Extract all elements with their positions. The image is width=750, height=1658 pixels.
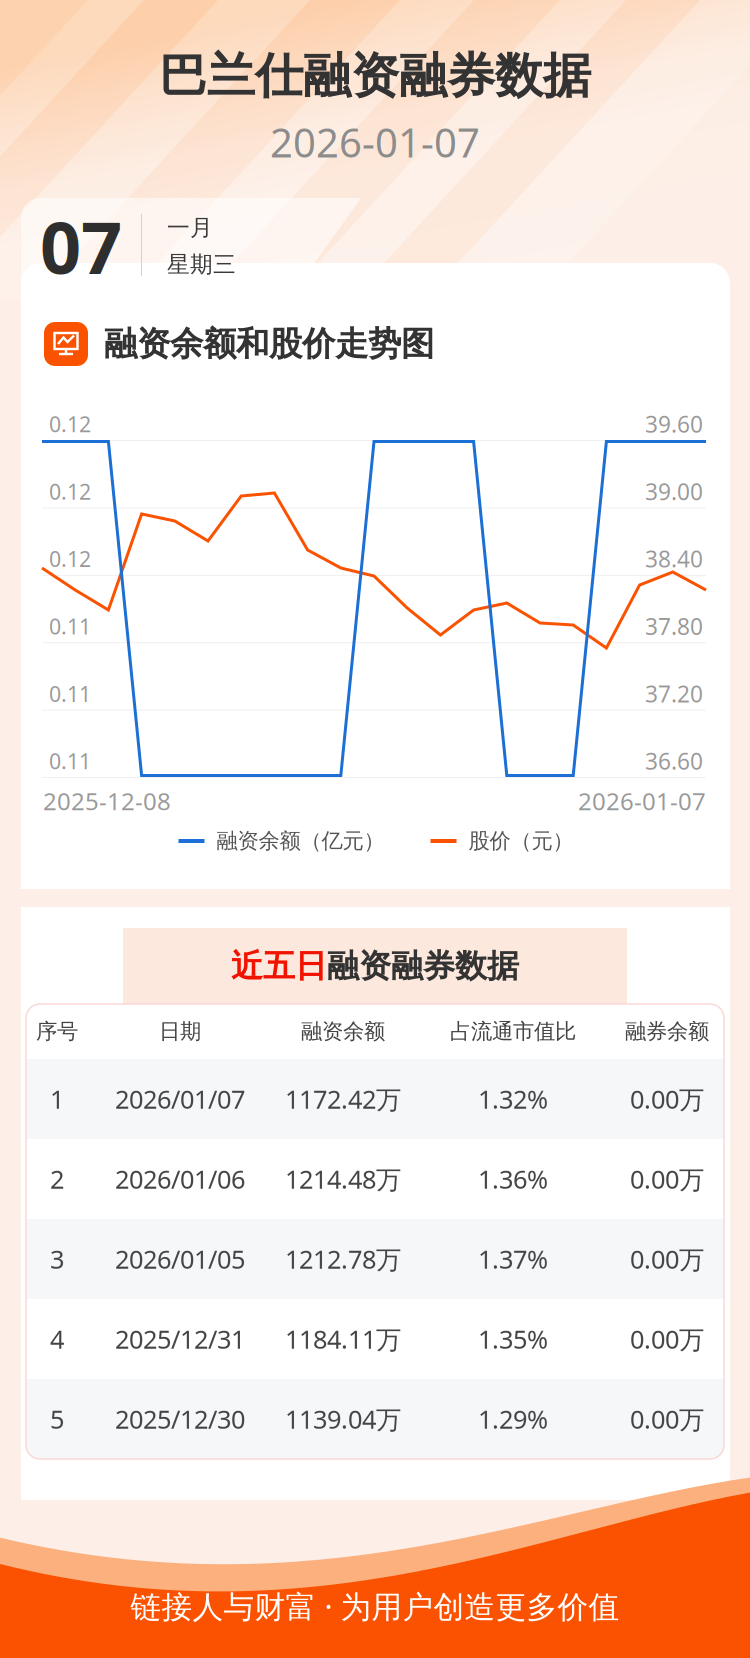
staticText: 07	[40, 198, 122, 294]
staticText: 1	[50, 1082, 64, 1116]
staticText: 链接人与财富 · 为用户创造更多价值	[130, 1586, 619, 1626]
staticText: 2025/12/31	[115, 1322, 245, 1356]
staticText: 一月	[167, 214, 213, 241]
staticText: 1172.42万	[285, 1082, 401, 1116]
staticText: 38.40	[645, 544, 703, 574]
staticText: 1.29%	[478, 1402, 548, 1436]
staticText: 序号	[36, 1018, 78, 1045]
staticText: 巴兰仕融资融券数据	[159, 46, 591, 105]
staticText: 0.12	[49, 545, 91, 573]
staticText: 股价（元）	[468, 828, 573, 854]
staticText: 2026/01/05	[115, 1242, 245, 1276]
staticText: 2025/12/30	[115, 1402, 245, 1436]
staticText: 4	[50, 1322, 64, 1356]
staticText: 2026-01-07	[578, 785, 706, 817]
staticText: 0.11	[49, 679, 91, 708]
staticText: 39.00	[645, 476, 703, 506]
staticText: 2	[50, 1162, 64, 1196]
staticText: 1184.11万	[285, 1322, 401, 1356]
staticText: 占流通市值比	[450, 1018, 576, 1045]
staticText: 1.35%	[478, 1322, 548, 1356]
staticText: 0.00万	[630, 1242, 704, 1276]
staticText: 2026-01-07	[270, 115, 480, 168]
staticText: 1.36%	[478, 1162, 548, 1196]
staticText: 0.12	[49, 477, 91, 505]
staticText: 2025-12-08	[43, 785, 171, 817]
staticText: 1.37%	[478, 1242, 548, 1276]
staticText: 37.80	[645, 611, 703, 641]
staticText: 融券余额	[625, 1018, 709, 1045]
staticText: 39.60	[645, 409, 703, 439]
staticText: 0.00万	[630, 1082, 704, 1116]
staticText: 星期三	[167, 250, 236, 278]
staticText: 0.00万	[630, 1162, 704, 1196]
staticText: 3	[50, 1242, 64, 1276]
staticText: 2026/01/07	[115, 1082, 245, 1116]
staticText: 2026/01/06	[115, 1162, 245, 1196]
staticText: 36.60	[645, 746, 703, 776]
staticText: 0.00万	[630, 1402, 704, 1436]
staticText: 日期	[159, 1018, 201, 1045]
staticText: 37.20	[645, 678, 703, 709]
staticText: 1214.48万	[285, 1162, 401, 1196]
staticText: 5	[50, 1402, 64, 1436]
staticText: 融资余额和股价走势图	[104, 323, 434, 364]
staticText: 0.12	[49, 410, 91, 438]
staticText: 1139.04万	[285, 1402, 401, 1436]
staticText: 融资融券数据	[327, 946, 519, 986]
staticText: 0.11	[49, 747, 91, 775]
staticText: 1212.78万	[285, 1242, 401, 1276]
staticText: 1.32%	[478, 1082, 548, 1116]
staticText: 0.11	[49, 612, 91, 640]
staticText: 融资余额	[301, 1018, 385, 1045]
staticText: 融资余额（亿元）	[216, 828, 384, 854]
button[interactable]: 07	[21, 198, 361, 290]
staticText: 近五日	[231, 946, 327, 986]
staticText: 0.00万	[630, 1322, 704, 1356]
